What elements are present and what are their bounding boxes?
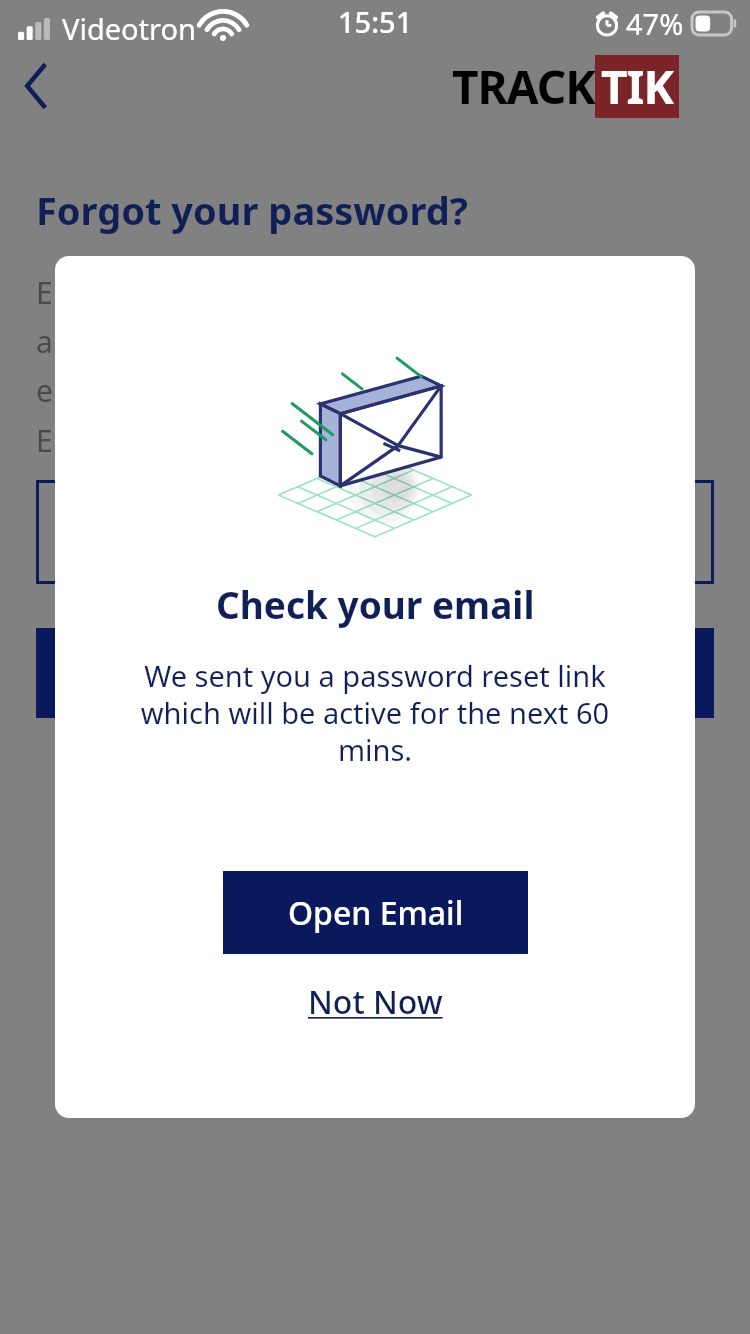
staticText: e xyxy=(36,370,53,411)
staticText: 15:51 xyxy=(338,2,413,41)
button[interactable]: Open Email xyxy=(223,871,528,954)
button[interactable] xyxy=(36,480,714,584)
staticText: We sent you a password reset link which … xyxy=(125,656,625,770)
other: TrackTik Security Systems xyxy=(452,55,750,148)
staticText: Not Now xyxy=(308,980,443,1024)
button[interactable] xyxy=(36,628,714,718)
staticText: Check your email xyxy=(216,579,535,629)
staticText: Open Email xyxy=(288,891,464,935)
button[interactable]: Back xyxy=(8,58,64,114)
staticText: E xyxy=(36,272,53,313)
staticText: a xyxy=(36,321,53,362)
staticText: TRACK xyxy=(452,55,595,118)
staticText: 47% xyxy=(626,4,684,43)
staticText: Forgot your password? xyxy=(36,184,468,236)
button[interactable]: Not Now xyxy=(284,970,467,1034)
staticText: TIK xyxy=(601,55,673,118)
staticText: Videotron xyxy=(62,9,196,48)
staticText: E xyxy=(36,420,53,461)
